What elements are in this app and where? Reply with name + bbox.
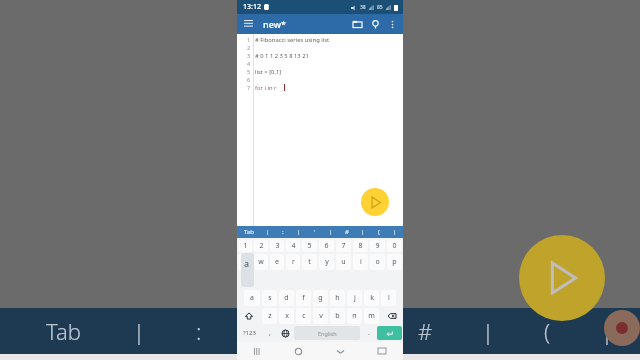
- button[interactable]: |: [260, 226, 275, 238]
- button[interactable]: Run: [519, 235, 605, 321]
- staticText: new*: [263, 18, 286, 30]
- button[interactable]: 2: [254, 240, 268, 252]
- button[interactable]: d: [279, 290, 294, 306]
- staticText: i: [360, 257, 362, 267]
- button[interactable]: f: [296, 290, 311, 306]
- staticText: 13:12: [243, 2, 261, 12]
- button[interactable]: Key: [238, 308, 260, 324]
- staticText: |: [482, 316, 494, 346]
- button[interactable]: p: [387, 254, 402, 270]
- button[interactable]: Menu: [240, 16, 256, 32]
- button[interactable]: Enter: [377, 326, 402, 340]
- button[interactable]: ?123: [238, 326, 261, 340]
- button[interactable]: (: [371, 226, 387, 238]
- button[interactable]: .: [362, 326, 375, 340]
- staticText: h: [335, 293, 340, 303]
- button[interactable]: q: [238, 254, 252, 270]
- staticText: a: [244, 257, 250, 269]
- button[interactable]: |: [323, 226, 339, 238]
- button[interactable]: u: [336, 254, 351, 270]
- staticText: 4: [247, 60, 251, 67]
- button[interactable]: Search: [366, 15, 384, 33]
- button[interactable]: 6: [319, 240, 334, 252]
- staticText: m: [368, 311, 375, 321]
- button[interactable]: x: [279, 308, 294, 324]
- button[interactable]: Tab: [237, 226, 260, 238]
- staticText: 2: [247, 44, 251, 51]
- button[interactable]: :: [275, 226, 291, 238]
- button[interactable]: ': [307, 226, 323, 238]
- staticText: ?123: [243, 329, 256, 337]
- button[interactable]: b: [330, 308, 345, 324]
- button[interactable]: Home: [278, 342, 319, 360]
- button[interactable]: Keyboard: [361, 342, 403, 360]
- button[interactable]: 7: [336, 240, 351, 252]
- button[interactable]: |: [355, 226, 371, 238]
- button[interactable]: Open folder: [348, 15, 366, 33]
- button[interactable]: l: [381, 290, 396, 306]
- staticText: # 0 1 1 2 3 5 8 13 21: [255, 52, 309, 60]
- staticText: English: [318, 330, 337, 337]
- button[interactable]: 8: [353, 240, 368, 252]
- staticText: .: [368, 328, 370, 338]
- button[interactable]: 5: [302, 240, 317, 252]
- button[interactable]: English: [294, 326, 360, 340]
- button[interactable]: 1: [238, 240, 252, 252]
- button[interactable]: a: [244, 290, 260, 306]
- staticText: f: [302, 293, 305, 303]
- staticText: 7: [341, 241, 346, 251]
- staticText: |: [601, 316, 613, 346]
- staticText: 38: [360, 4, 366, 11]
- button[interactable]: k: [364, 290, 379, 306]
- button[interactable]: Back: [319, 342, 361, 360]
- button[interactable]: s: [262, 290, 277, 306]
- button[interactable]: h: [330, 290, 345, 306]
- staticText: 4: [291, 241, 296, 251]
- staticText: 6: [247, 76, 251, 83]
- staticText: l: [388, 293, 390, 303]
- button[interactable]: Change language: [278, 326, 292, 340]
- button[interactable]: e: [270, 254, 284, 270]
- button[interactable]: v: [313, 308, 328, 324]
- button[interactable]: More options: [384, 16, 400, 32]
- button[interactable]: y: [319, 254, 334, 270]
- staticText: #: [345, 228, 349, 236]
- button[interactable]: ,: [263, 326, 276, 340]
- button[interactable]: Recents: [237, 342, 278, 360]
- staticText: 3: [275, 241, 280, 251]
- staticText: :: [282, 228, 284, 236]
- staticText: e: [275, 257, 279, 267]
- staticText: ': [308, 316, 313, 346]
- button[interactable]: Run script: [361, 188, 389, 216]
- button[interactable]: 3: [270, 240, 284, 252]
- staticText: x: [285, 311, 289, 321]
- staticText: v: [319, 311, 323, 321]
- button[interactable]: m: [364, 308, 379, 324]
- button[interactable]: n: [347, 308, 362, 324]
- staticText: Tab: [244, 228, 254, 236]
- button[interactable]: j: [347, 290, 362, 306]
- staticText: z: [268, 311, 272, 321]
- button[interactable]: r: [286, 254, 300, 270]
- button[interactable]: i: [353, 254, 368, 270]
- button[interactable]: |: [387, 226, 403, 238]
- button[interactable]: 9: [370, 240, 385, 252]
- button[interactable]: |: [291, 226, 307, 238]
- staticText: 7: [247, 84, 251, 91]
- staticText: 85: [377, 4, 383, 11]
- button[interactable]: #: [339, 226, 355, 238]
- button[interactable]: o: [370, 254, 385, 270]
- button[interactable]: g: [313, 290, 328, 306]
- button[interactable]: w: [254, 254, 268, 270]
- button[interactable]: 4: [286, 240, 300, 252]
- staticText: |: [357, 316, 369, 346]
- staticText: |: [361, 228, 365, 236]
- staticText: (: [378, 228, 380, 236]
- staticText: a: [250, 293, 254, 303]
- button[interactable]: Key: [381, 308, 402, 324]
- button[interactable]: z: [262, 308, 277, 324]
- button[interactable]: c: [296, 308, 311, 324]
- button[interactable]: t: [302, 254, 317, 270]
- button[interactable]: 0: [387, 240, 402, 252]
- staticText: 6: [324, 241, 329, 251]
